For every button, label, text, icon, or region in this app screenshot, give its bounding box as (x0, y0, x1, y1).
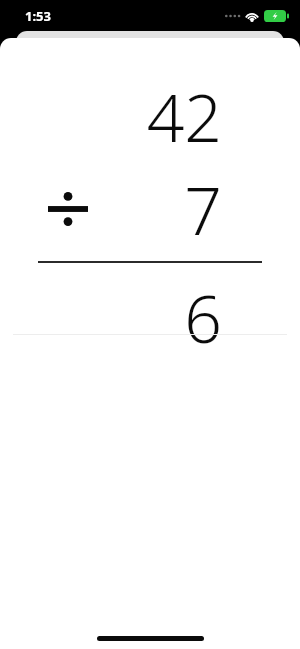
other: Home indicator (97, 636, 204, 641)
staticText: 6 (184, 272, 222, 362)
staticText: 7 (184, 164, 222, 254)
staticText: 42 (146, 71, 222, 161)
staticText: 1:53 (25, 7, 51, 25)
button[interactable]: 42 (0, 38, 300, 334)
